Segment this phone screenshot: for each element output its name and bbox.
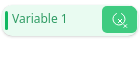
button[interactable]: Variable 1 [2,5,138,36]
button[interactable]: Detach variable [102,6,137,33]
staticText: Variable 1 [12,10,68,26]
